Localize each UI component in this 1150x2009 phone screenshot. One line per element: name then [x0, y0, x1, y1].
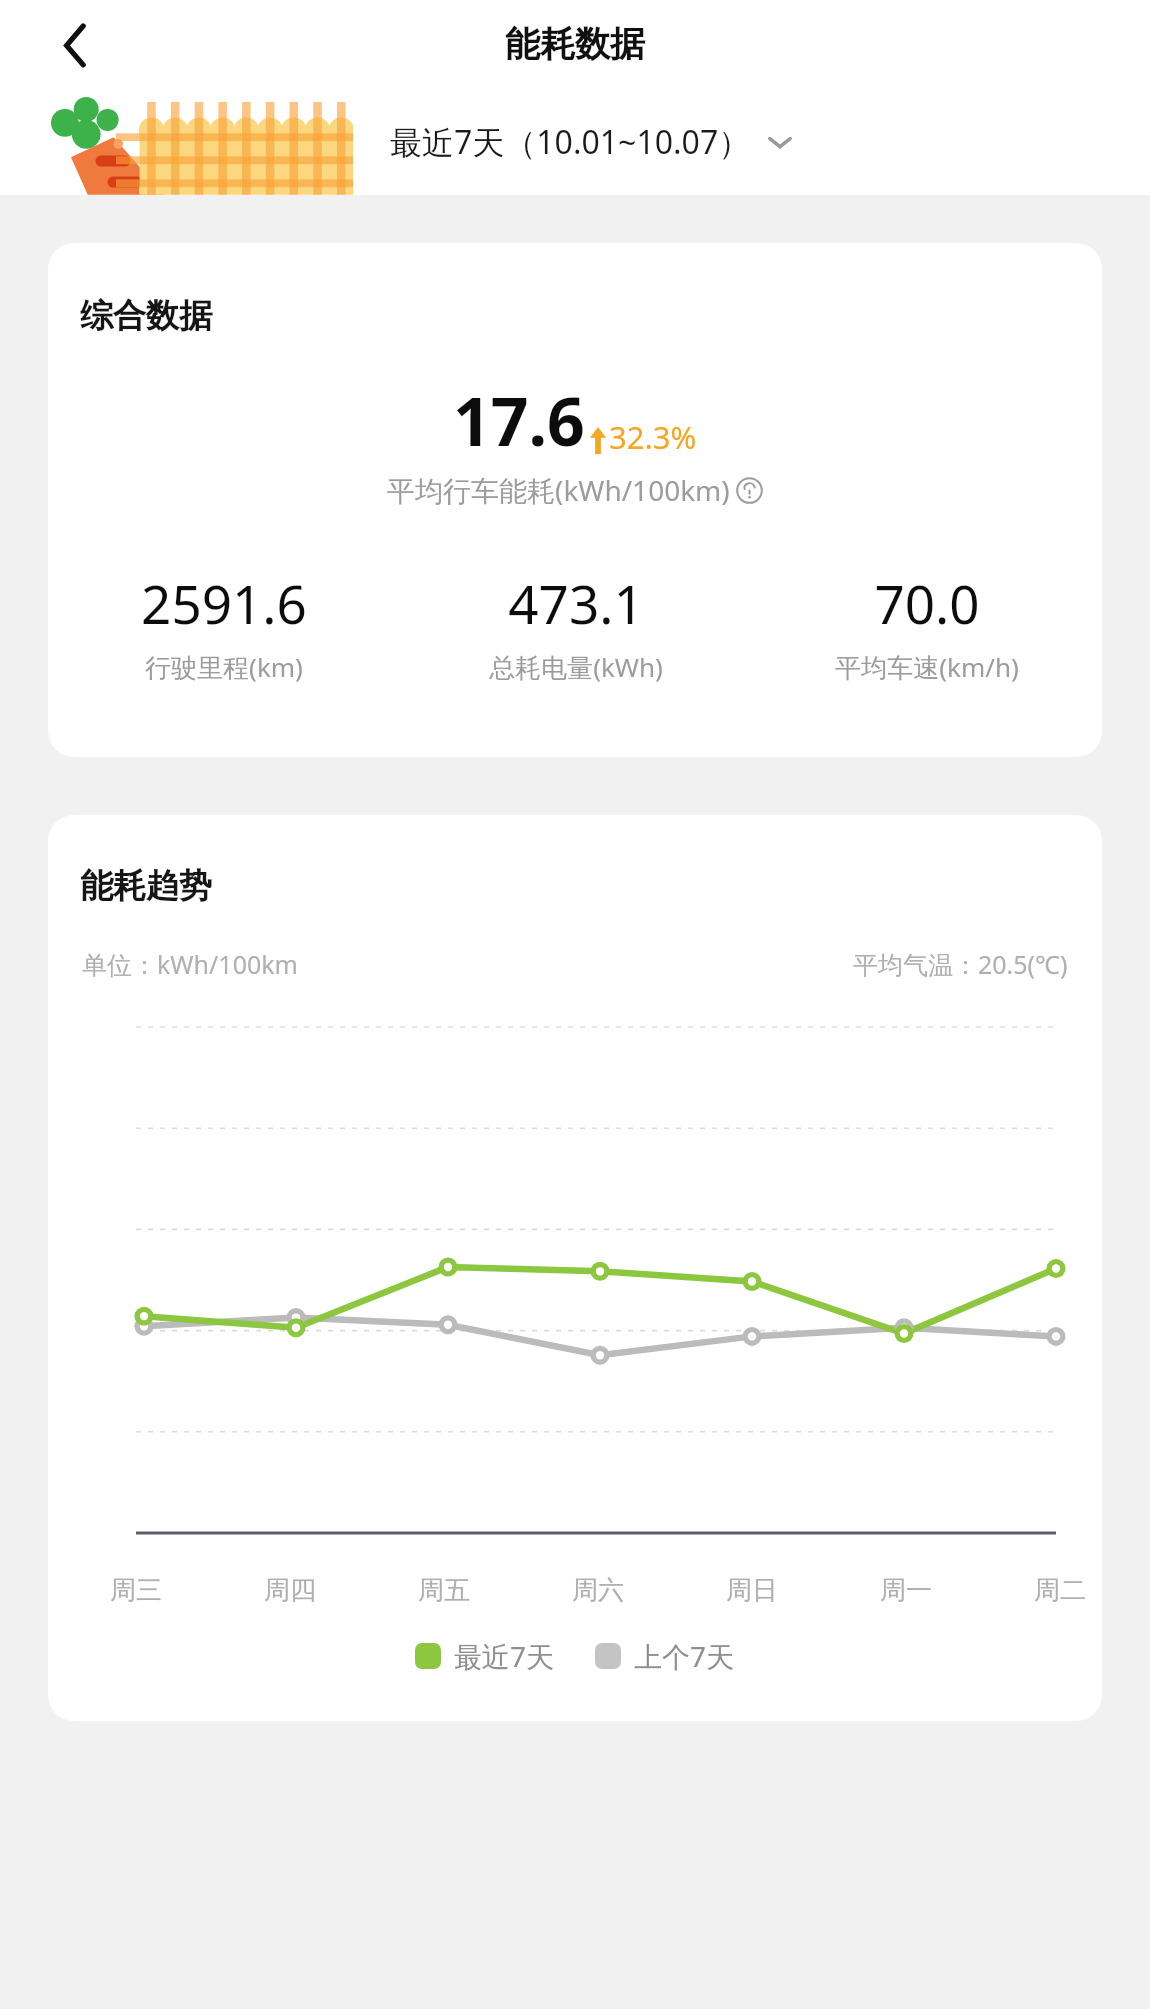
- staticText: 周四: [264, 1574, 316, 1607]
- staticText: 平均行车能耗(kWh/100km): [387, 471, 730, 509]
- button[interactable]: Back: [36, 8, 108, 80]
- staticText: 能耗数据: [505, 22, 645, 66]
- button[interactable]: 综合数据: [48, 243, 1102, 757]
- staticText: 32.3%: [609, 416, 697, 458]
- staticText: 最近7天（10.01~10.07）: [390, 120, 751, 164]
- staticText: 70.0: [874, 567, 980, 639]
- staticText: 最近7天: [454, 1637, 555, 1675]
- button[interactable]: 最近7天: [415, 1637, 555, 1675]
- button[interactable]: 上个7天: [595, 1637, 735, 1675]
- staticText: 17.6: [453, 375, 585, 465]
- staticText: 周六: [572, 1574, 624, 1607]
- staticText: 2591.6: [141, 567, 307, 639]
- staticText: 单位：kWh/100km: [82, 947, 298, 981]
- staticText: 473.1: [508, 567, 644, 639]
- button[interactable]: 最近7天（10.01~10.07）: [380, 112, 807, 172]
- staticText: 综合数据: [80, 295, 212, 337]
- staticText: 周三: [110, 1574, 162, 1607]
- button[interactable]: 473.1: [400, 567, 751, 685]
- staticText: 周一: [880, 1574, 932, 1607]
- button[interactable]: Help: [736, 477, 763, 504]
- staticText: 行驶里程(km): [145, 649, 303, 685]
- staticText: 周二: [1034, 1574, 1086, 1607]
- button[interactable]: 70.0: [751, 567, 1102, 685]
- staticText: 平均气温：20.5(℃): [853, 947, 1068, 981]
- staticText: 周日: [726, 1574, 778, 1607]
- staticText: 总耗电量(kWh): [489, 649, 663, 685]
- staticText: 周五: [418, 1574, 470, 1607]
- staticText: 平均车速(km/h): [835, 649, 1019, 685]
- button[interactable]: 2591.6: [48, 567, 400, 685]
- staticText: 上个7天: [634, 1637, 735, 1675]
- staticText: 能耗趋势: [80, 865, 212, 907]
